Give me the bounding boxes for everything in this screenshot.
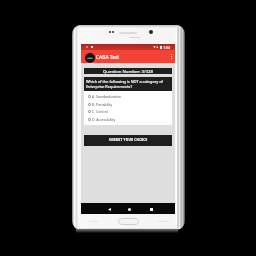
button[interactable]: More options — [169, 51, 174, 62]
staticText: SAMSUNG — [129, 36, 140, 39]
button[interactable] — [85, 53, 95, 63]
button[interactable]: C. Control — [84, 108, 172, 115]
staticText: Question Number: 3/328 — [103, 68, 154, 74]
button[interactable]: SUBMIT YOUR CHOICE — [84, 135, 172, 146]
staticText: SUBMIT YOUR CHOICE — [109, 138, 148, 142]
button[interactable]: D. Accessibility — [84, 116, 172, 123]
button[interactable]: A. Standardization — [84, 93, 172, 100]
button[interactable]: Back — [105, 205, 113, 213]
staticText: D. Accessibility — [92, 117, 116, 122]
staticText: A. Standardization — [92, 94, 122, 99]
button[interactable]: Home — [125, 205, 133, 213]
staticText: Which of the following is NOT a category… — [86, 79, 172, 89]
button[interactable]: B. Portability — [84, 101, 172, 108]
staticText: B. Portability — [92, 102, 113, 107]
button[interactable]: Recent apps — [147, 205, 155, 213]
staticText: 1:04 — [163, 45, 171, 50]
staticText: C. Control — [92, 109, 108, 114]
staticText: CABA Test — [96, 54, 120, 61]
